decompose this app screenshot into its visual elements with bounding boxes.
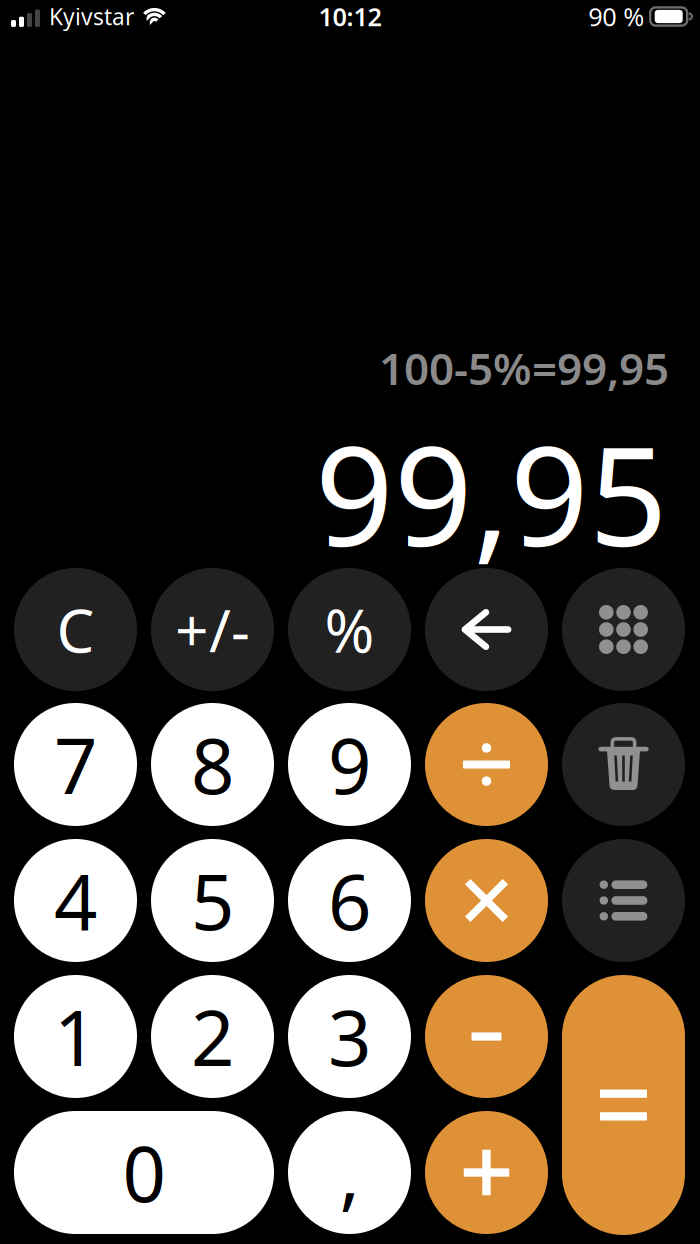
button[interactable]: Subtract (425, 975, 548, 1098)
button[interactable]: Delete (562, 703, 685, 826)
button[interactable]: , (288, 1111, 411, 1234)
button[interactable]: 4 (14, 839, 137, 962)
staticText: 90 % (588, 0, 644, 33)
button[interactable]: C (14, 568, 137, 691)
staticText: 9 (328, 714, 371, 815)
button[interactable]: Equals (562, 975, 685, 1235)
button[interactable]: 2 (151, 975, 274, 1098)
button[interactable]: History (562, 839, 685, 962)
staticText: 5 (191, 850, 234, 951)
staticText: 6 (328, 850, 371, 951)
staticText: Kyivstar (49, 1, 134, 31)
button[interactable]: Backspace (425, 568, 548, 691)
staticText: % (324, 590, 374, 669)
button[interactable]: 5 (151, 839, 274, 962)
staticText: 1 (54, 986, 97, 1087)
staticText: 0 (122, 1122, 165, 1223)
staticText: 99,95 (315, 402, 668, 584)
staticText: C (56, 590, 94, 669)
button[interactable]: 3 (288, 975, 411, 1098)
button[interactable]: 6 (288, 839, 411, 962)
staticText: 2 (191, 986, 234, 1087)
button[interactable]: 0 (14, 1111, 274, 1234)
button[interactable]: 9 (288, 703, 411, 826)
button[interactable]: 7 (14, 703, 137, 826)
staticText: 3 (328, 986, 371, 1087)
staticText: , (339, 1122, 359, 1223)
staticText: 10:12 (318, 0, 381, 33)
button[interactable]: Divide (425, 703, 548, 826)
staticText: 7 (54, 714, 97, 815)
button[interactable]: Multiply (425, 839, 548, 962)
button[interactable]: Keypad (562, 568, 685, 691)
staticText: +/- (175, 590, 250, 668)
button[interactable]: 8 (151, 703, 274, 826)
button[interactable]: 1 (14, 975, 137, 1098)
button[interactable]: +/- (151, 568, 274, 691)
staticText: 8 (191, 714, 234, 815)
staticText: 4 (54, 850, 97, 951)
staticText: 100-5%=99,95 (379, 339, 669, 397)
button[interactable]: Add (425, 1111, 548, 1234)
button[interactable]: % (288, 568, 411, 691)
